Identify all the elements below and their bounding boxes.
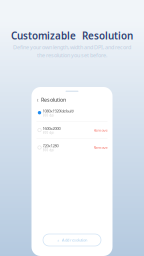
staticText: 1600x2000 xyxy=(42,126,60,131)
staticText: the resolution you set before. xyxy=(37,51,107,59)
staticText: Define your own length, width and DPI, a… xyxy=(13,43,131,51)
staticText: Remove xyxy=(93,145,107,150)
staticText: 1080x1920(default) xyxy=(42,108,73,114)
button[interactable]: 1600x2000 xyxy=(31,122,112,139)
button[interactable]: 720x1280 xyxy=(31,139,112,156)
staticText: + Add resolution xyxy=(57,237,87,243)
button[interactable]: ‹ xyxy=(31,95,112,104)
staticText: 300 dpi xyxy=(42,114,54,117)
staticText: 300 dpi xyxy=(42,131,54,134)
staticText: ‹ xyxy=(36,95,38,104)
staticText: Remove xyxy=(93,127,107,133)
staticText: Resolution xyxy=(41,96,66,103)
button[interactable]: + Add resolution xyxy=(43,234,101,246)
button[interactable]: 1080x1920(default) xyxy=(31,104,112,121)
staticText: 720x1280 xyxy=(42,143,58,148)
staticText: Customizable Resolution xyxy=(11,29,133,42)
staticText: 300 dpi xyxy=(42,148,54,152)
